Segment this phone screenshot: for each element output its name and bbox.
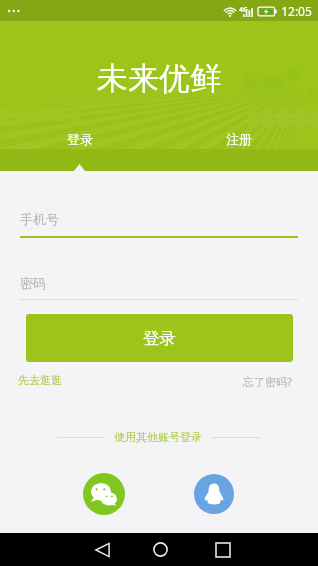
staticText: 忘了密码? xyxy=(243,374,292,389)
staticText: 注册 xyxy=(226,131,252,147)
staticText: 手机号 xyxy=(20,211,59,227)
button[interactable]: QQ login xyxy=(194,474,234,514)
button[interactable]: 登录 xyxy=(26,314,293,362)
staticText: 使用其他账号登录 xyxy=(114,430,202,444)
button[interactable]: 忘了密码? xyxy=(243,374,292,389)
staticText: 先去逛逛 xyxy=(18,373,62,387)
staticText: 4G xyxy=(239,5,248,14)
staticText: 登录 xyxy=(67,131,93,147)
button[interactable]: 注册 xyxy=(159,127,318,151)
button[interactable]: 登录 xyxy=(0,127,159,151)
button[interactable]: WeChat login xyxy=(83,473,125,515)
staticText: 未来优鲜 xyxy=(97,59,221,98)
staticText: 12:05 xyxy=(281,3,312,19)
button[interactable]: Home xyxy=(138,533,182,566)
button[interactable]: Back xyxy=(80,533,124,566)
staticText: 密码 xyxy=(20,275,46,291)
button[interactable]: 先去逛逛 xyxy=(18,373,62,387)
button[interactable]: Recents xyxy=(201,533,245,566)
staticText: 登录 xyxy=(143,328,176,349)
